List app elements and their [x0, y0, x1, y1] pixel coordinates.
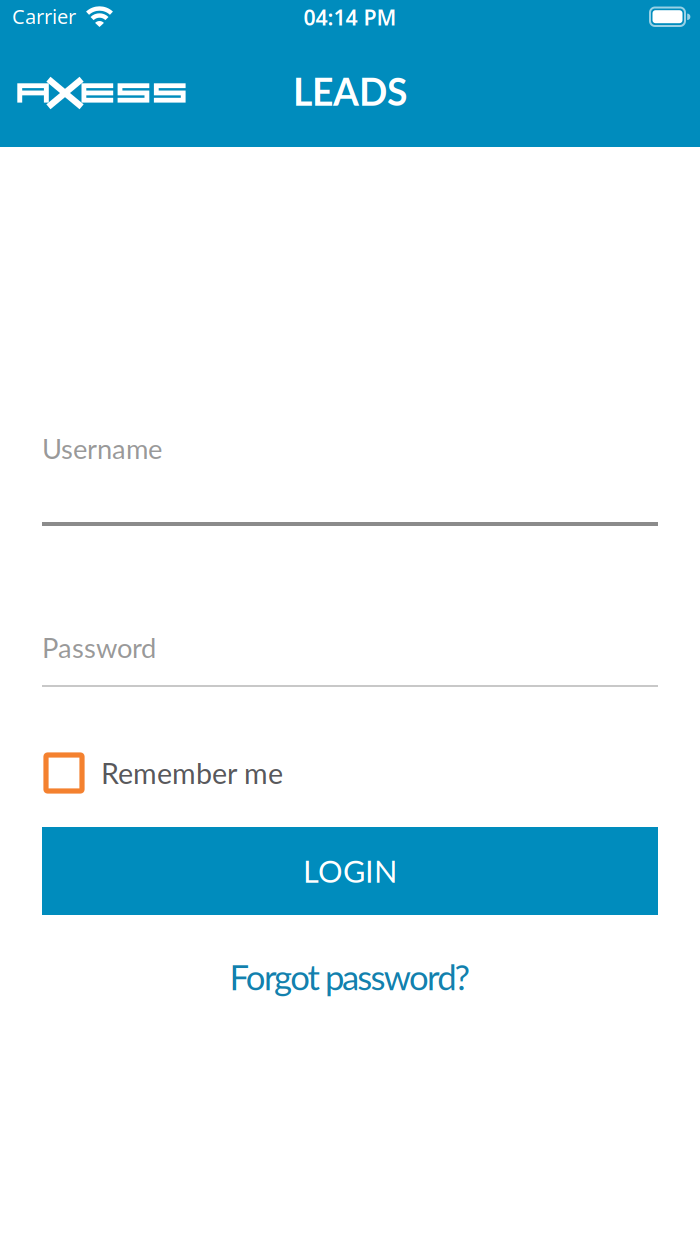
button[interactable]: Remember me	[46, 755, 283, 791]
staticText: Carrier	[12, 3, 76, 30]
button[interactable]: Username	[42, 432, 658, 526]
staticText: 04:14 PM	[303, 3, 396, 31]
button[interactable]: Forgot password?	[229, 956, 470, 998]
staticText: LOGIN	[303, 853, 397, 889]
button[interactable]: Password	[42, 631, 658, 687]
staticText: Forgot password?	[229, 956, 470, 998]
button[interactable]: LOGIN	[42, 827, 658, 915]
staticText: Remember me	[101, 756, 283, 790]
staticText: Username	[42, 432, 162, 465]
staticText: LEADS	[293, 69, 407, 114]
staticText: Password	[42, 631, 156, 664]
